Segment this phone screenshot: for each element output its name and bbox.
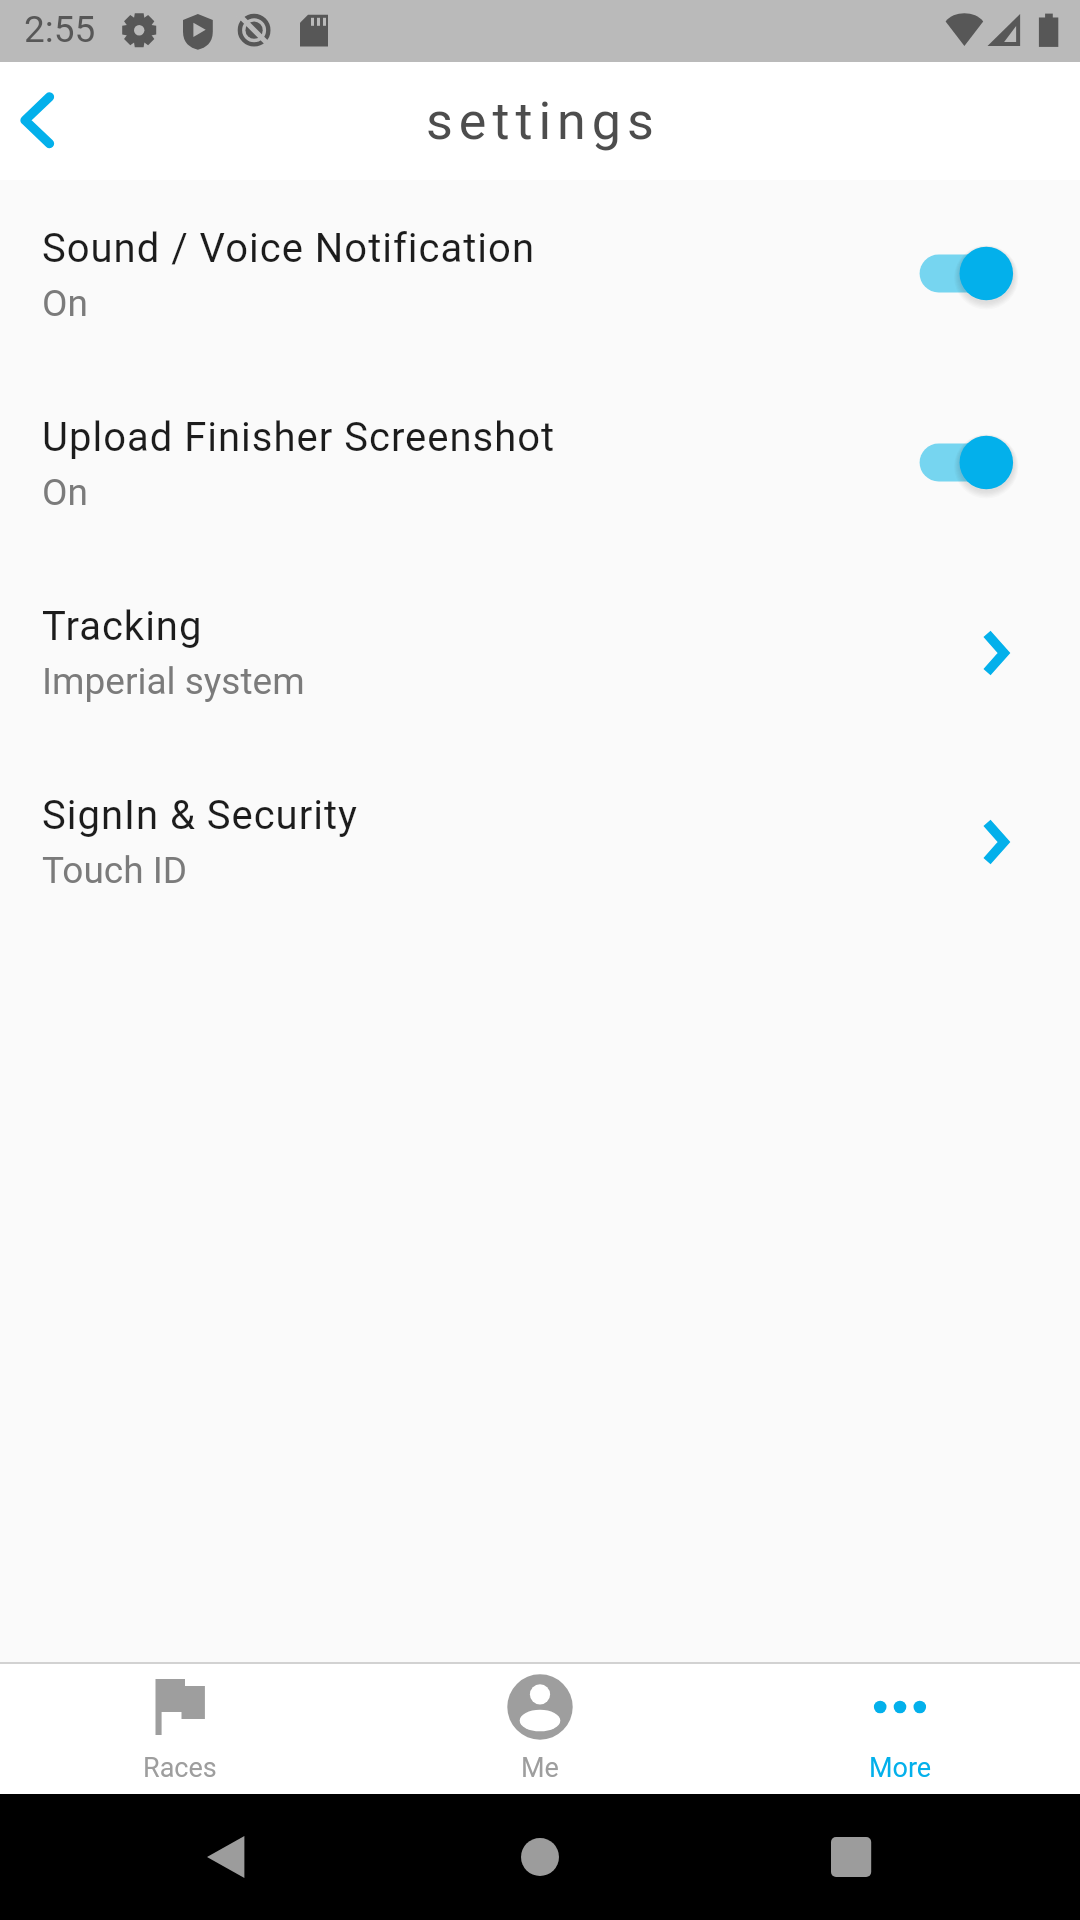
staticText: On bbox=[42, 471, 88, 514]
button[interactable]: Races bbox=[0, 1664, 360, 1794]
staticText: On bbox=[42, 282, 88, 325]
button[interactable]: Tracking bbox=[0, 558, 1080, 747]
staticText: Sound / Voice Notification bbox=[42, 225, 535, 272]
button[interactable]: Sound / Voice Notification bbox=[0, 180, 1080, 369]
staticText: Touch ID bbox=[42, 849, 188, 892]
button[interactable]: Toggle Sound / Voice Notification bbox=[908, 235, 1028, 315]
staticText: Upload Finisher Screenshot bbox=[42, 414, 556, 461]
button[interactable]: More bbox=[720, 1664, 1080, 1794]
button[interactable]: Upload Finisher Screenshot bbox=[0, 369, 1080, 558]
staticText: Me bbox=[521, 1752, 559, 1784]
staticText: SignIn & Security bbox=[42, 792, 358, 839]
staticText: Tracking bbox=[42, 603, 203, 650]
button[interactable]: Back bbox=[0, 71, 100, 171]
staticText: settings bbox=[426, 91, 660, 152]
staticText: 2:55 bbox=[24, 8, 96, 51]
button[interactable]: Toggle Upload Finisher Screenshot bbox=[908, 424, 1028, 504]
button[interactable]: Me bbox=[360, 1664, 720, 1794]
button[interactable]: SignIn & Security bbox=[0, 747, 1080, 936]
staticText: More bbox=[869, 1752, 932, 1784]
staticText: Imperial system bbox=[42, 660, 305, 703]
button[interactable]: Open SignIn & Security bbox=[968, 802, 1028, 882]
button[interactable]: Open Tracking bbox=[968, 613, 1028, 693]
staticText: Races bbox=[143, 1752, 217, 1784]
